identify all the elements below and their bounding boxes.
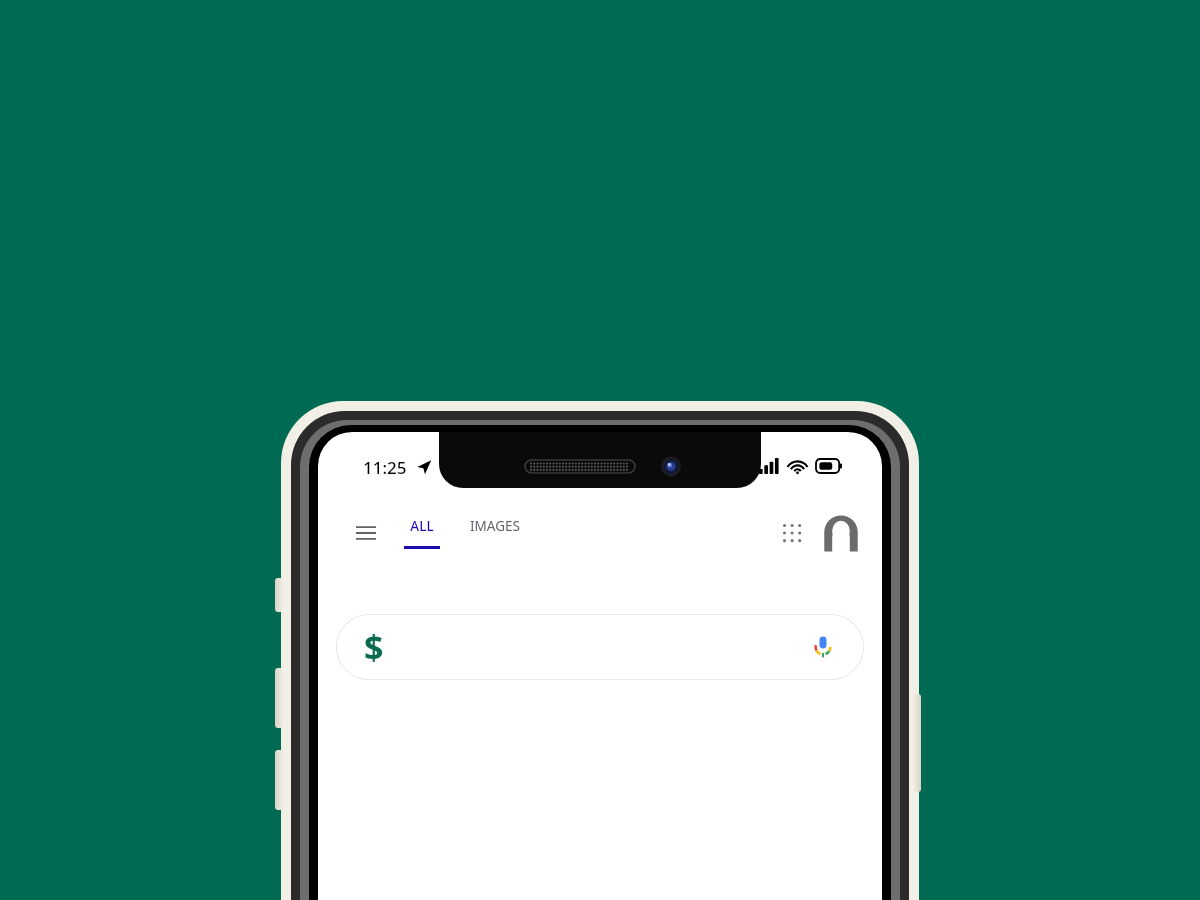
staticText: ALL: [410, 517, 434, 535]
button[interactable]: Account: [818, 510, 864, 556]
button[interactable]: $: [336, 614, 864, 680]
button[interactable]: IMAGES: [462, 524, 528, 542]
button[interactable]: Voice search: [806, 630, 840, 664]
staticText: IMAGES: [470, 517, 520, 535]
staticText: $: [364, 624, 384, 670]
button[interactable]: Menu: [348, 515, 384, 551]
button[interactable]: ALL: [396, 517, 448, 549]
staticText: 11:25: [363, 456, 407, 479]
button[interactable]: Google apps: [772, 513, 812, 553]
